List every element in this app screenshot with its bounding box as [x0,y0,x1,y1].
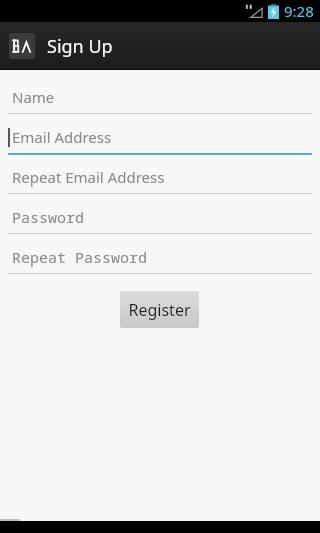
staticText: Repeat Email Address [12,167,165,187]
button[interactable]: Repeat Email Address [0,160,320,200]
staticText: Sign Up [47,34,113,59]
staticText: Password [12,207,85,227]
button[interactable]: Password [0,200,320,240]
button[interactable]: Name [0,80,320,120]
staticText: Email Address [12,127,112,147]
staticText: Name [12,87,55,107]
staticText: Repeat Password [12,247,148,267]
staticText: 9:28 [284,1,314,21]
button[interactable]: Repeat Password [0,240,320,280]
staticText: Register [128,299,191,321]
button[interactable]: Register [120,291,199,328]
button[interactable]: Email Address [0,120,320,160]
other: App logo [9,33,35,59]
